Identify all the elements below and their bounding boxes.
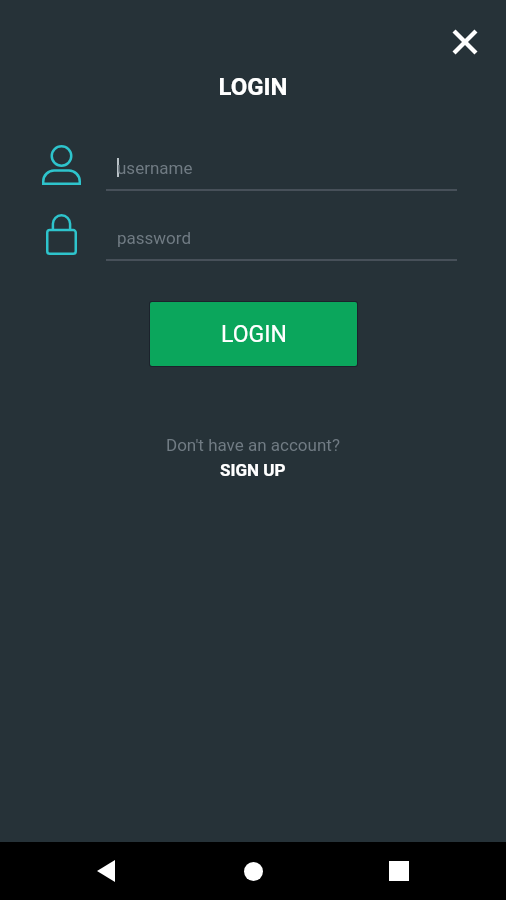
staticText: password [117,228,192,248]
button[interactable]: Don't have an account? [0,435,506,480]
staticText: username [117,158,193,178]
button[interactable]: Recents [363,849,435,893]
button[interactable]: Back [70,849,142,893]
staticText: LOGIN [221,321,287,348]
button[interactable]: Close [442,19,487,64]
button[interactable]: Home [217,849,289,893]
staticText: Don't have an account? [166,435,340,455]
button[interactable]: LOGIN [150,302,357,366]
staticText: LOGIN [0,73,506,101]
staticText: SIGN UP [220,460,286,480]
